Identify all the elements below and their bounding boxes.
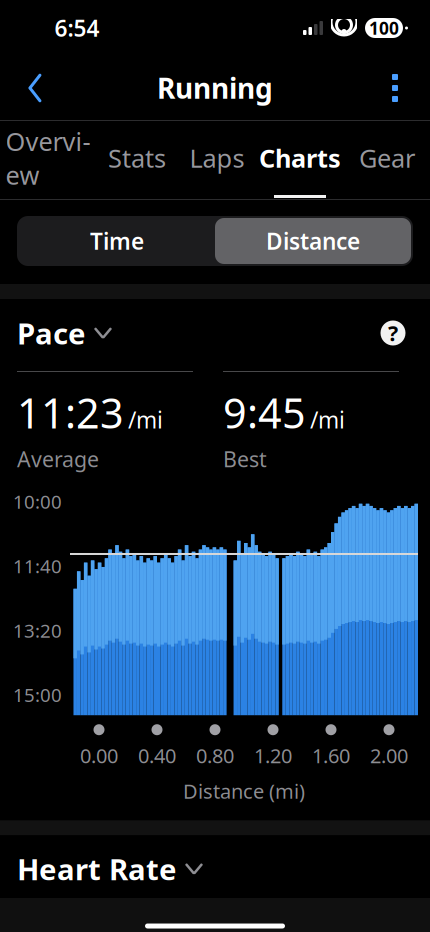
- staticText: Distance (mi): [183, 778, 305, 804]
- staticText: 13:20: [13, 618, 62, 643]
- staticText: Charts: [259, 141, 341, 175]
- button[interactable]: Heart Rate: [17, 849, 202, 888]
- staticText: /mi: [310, 405, 345, 435]
- button[interactable]: More options: [368, 64, 422, 112]
- staticText: 10:00: [13, 489, 62, 514]
- staticText: Time: [90, 226, 144, 256]
- staticText: 0.40: [138, 742, 176, 769]
- button[interactable]: Gear: [344, 121, 430, 199]
- staticText: 9:45: [223, 385, 306, 440]
- staticText: Gear: [359, 141, 415, 175]
- staticText: Best: [223, 445, 267, 473]
- button[interactable]: Help: [373, 313, 413, 353]
- staticText: Average: [17, 445, 99, 473]
- staticText: 11:23: [17, 385, 124, 440]
- staticText: 100: [369, 16, 399, 39]
- staticText: 0.00: [80, 742, 118, 769]
- staticText: 15:00: [13, 682, 62, 707]
- staticText: Pace: [17, 313, 86, 352]
- staticText: Heart Rate: [17, 849, 177, 888]
- staticText: 1.20: [254, 742, 292, 769]
- staticText: Distance: [266, 226, 360, 256]
- staticText: 2.00: [370, 742, 408, 769]
- staticText: ?: [388, 319, 398, 347]
- button[interactable]: Back: [8, 64, 62, 112]
- button[interactable]: Stats: [96, 121, 178, 199]
- staticText: 11:40: [13, 554, 62, 578]
- button[interactable]: Laps: [178, 121, 256, 199]
- staticText: 178: [223, 920, 295, 932]
- staticText: 1.60: [312, 742, 350, 769]
- staticText: /mi: [128, 405, 163, 435]
- staticText: 0.80: [196, 742, 234, 769]
- staticText: 6:54: [54, 13, 99, 43]
- staticText: Laps: [189, 141, 244, 175]
- button[interactable]: Time: [19, 218, 215, 264]
- button[interactable]: Pace: [17, 313, 111, 352]
- button[interactable]: Charts: [256, 121, 344, 199]
- button[interactable]: Distance: [215, 218, 411, 264]
- button[interactable]: Overview: [0, 121, 96, 199]
- staticText: Stats: [108, 141, 166, 175]
- staticText: Running: [157, 69, 273, 107]
- staticText: Overview: [5, 124, 90, 192]
